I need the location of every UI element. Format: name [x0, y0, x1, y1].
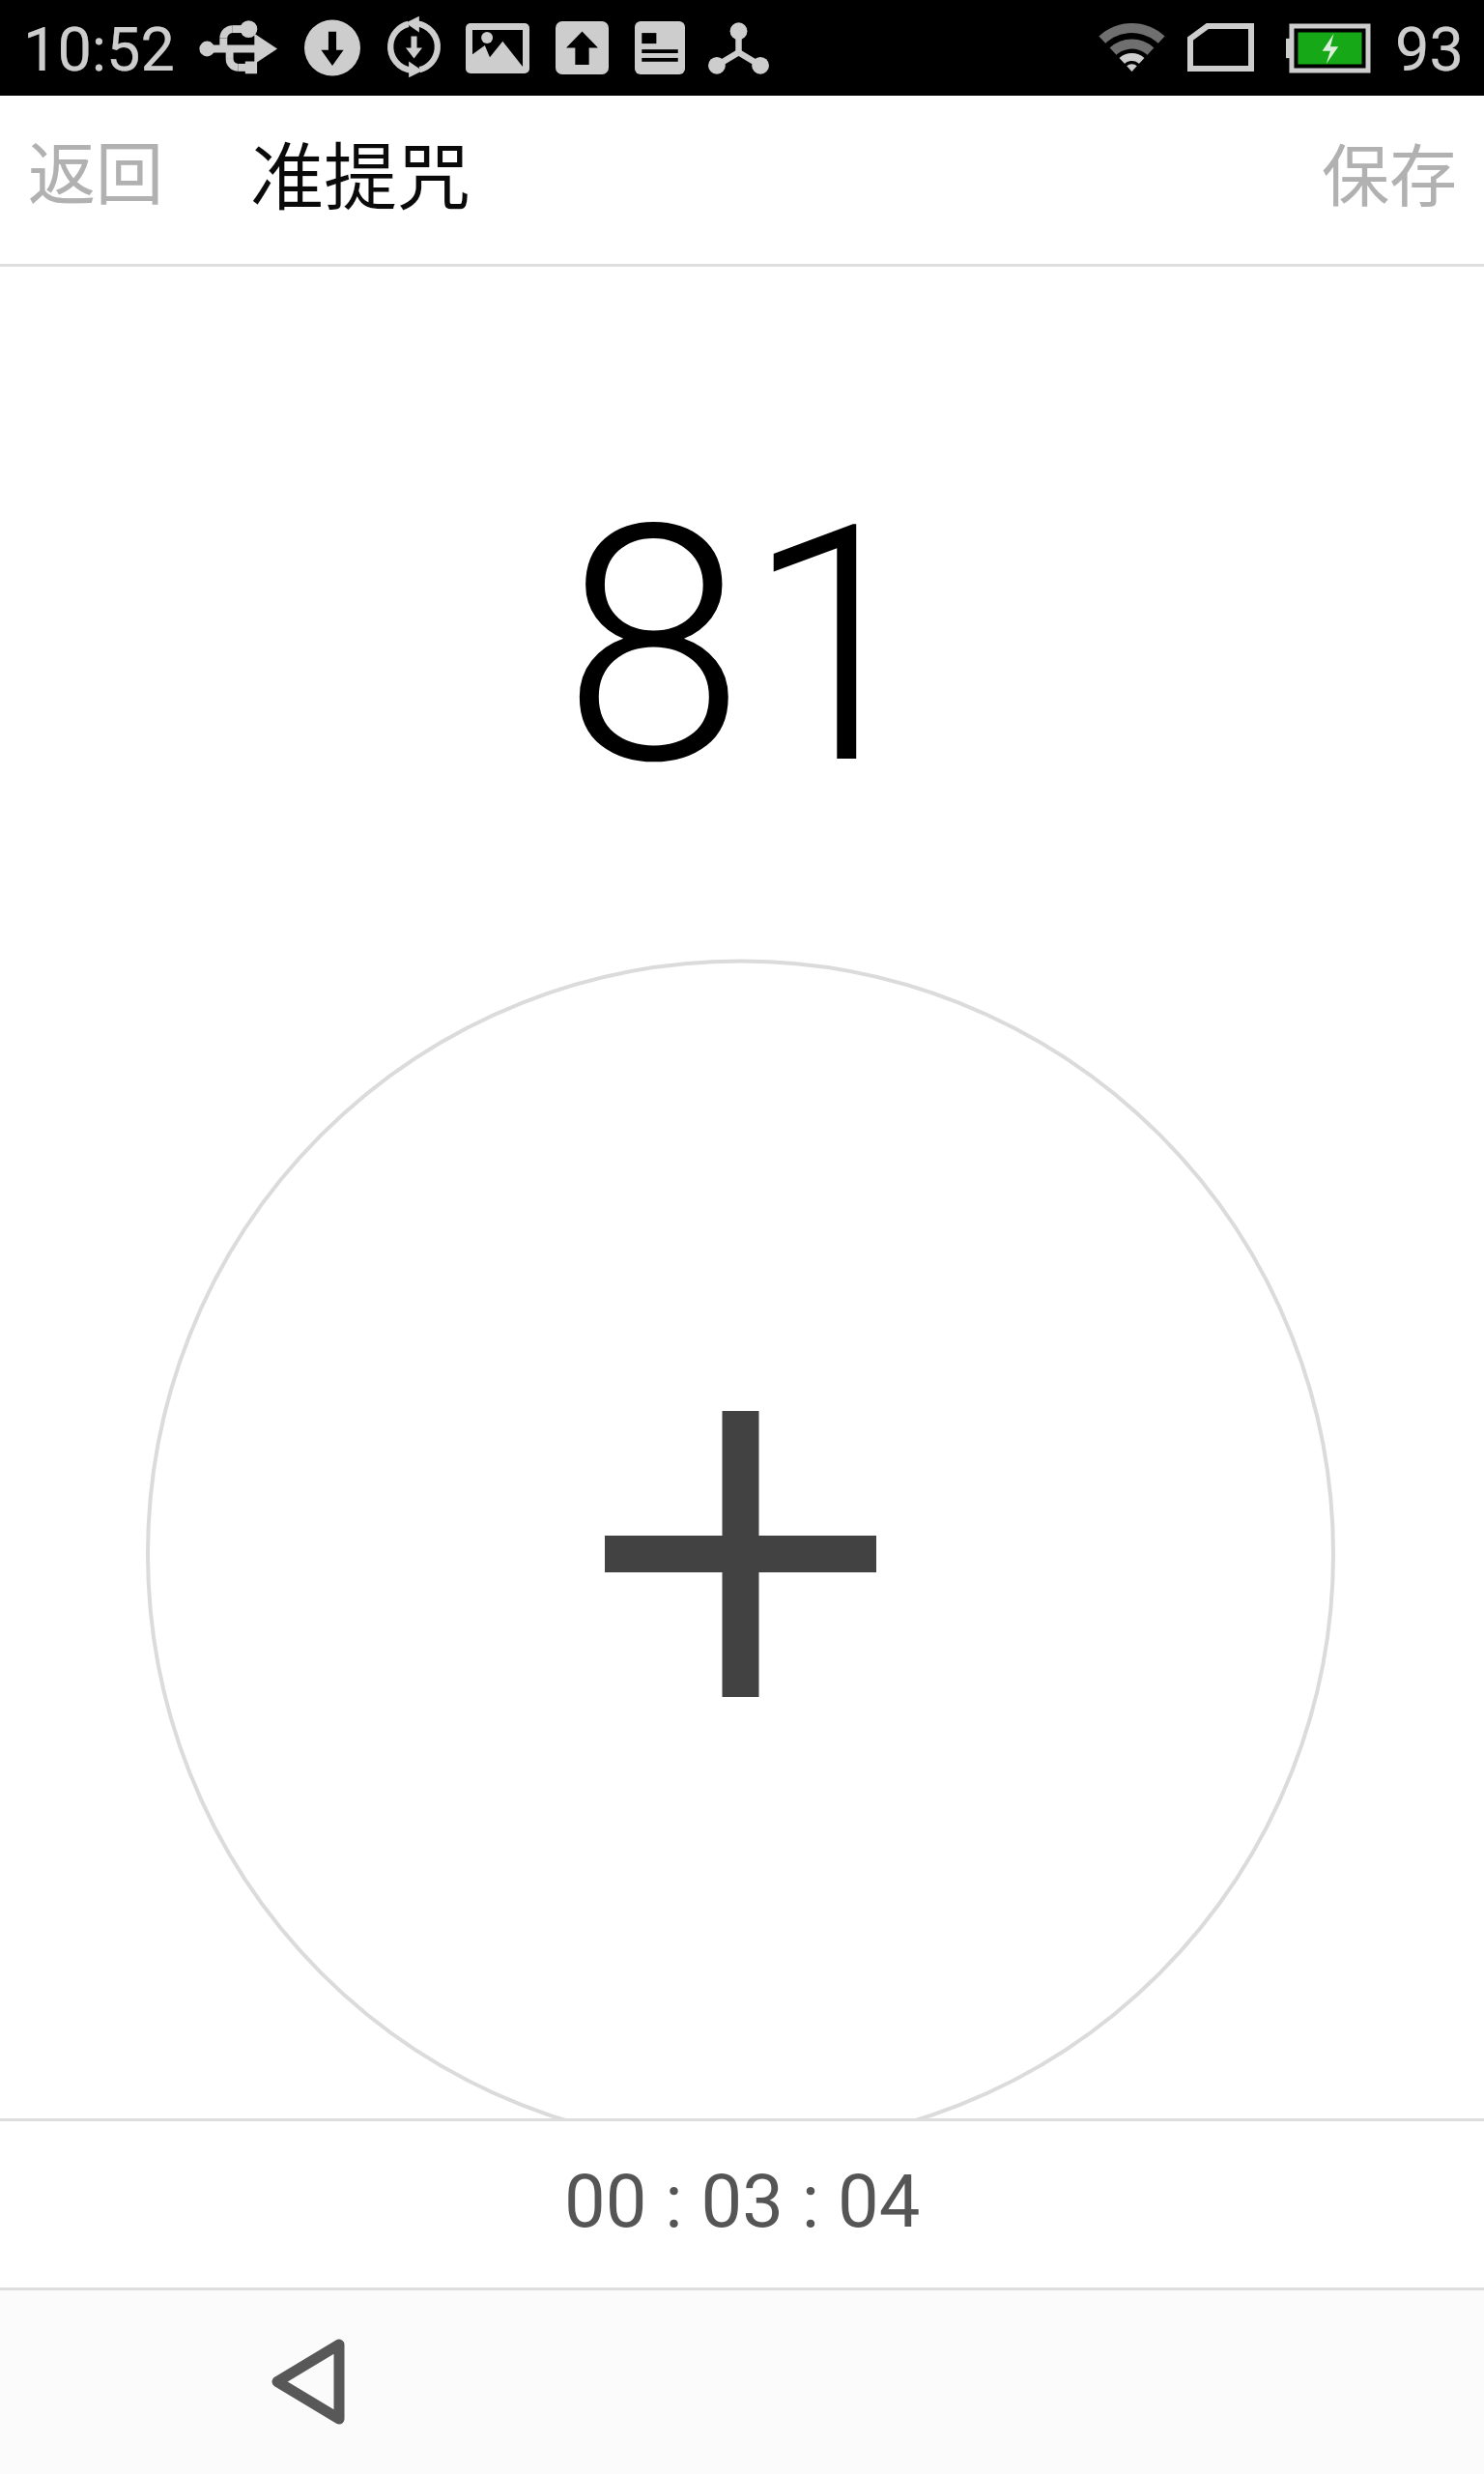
- staticText: 93: [1395, 14, 1464, 86]
- button[interactable]: Back: [242, 2311, 377, 2450]
- staticText: 00 : 03 : 04: [564, 2158, 921, 2244]
- button[interactable]: 00 : 03 : 04: [526, 2133, 959, 2273]
- button[interactable]: 返回: [0, 96, 216, 267]
- button[interactable]: 保存: [1287, 96, 1484, 267]
- staticText: 准提咒: [250, 119, 471, 225]
- staticText: 保存: [1322, 123, 1457, 220]
- staticText: 10:52: [23, 14, 175, 86]
- button[interactable]: Tap to add one count: [0, 267, 1484, 2118]
- staticText: 返回: [28, 121, 163, 218]
- staticText: 81: [562, 454, 927, 839]
